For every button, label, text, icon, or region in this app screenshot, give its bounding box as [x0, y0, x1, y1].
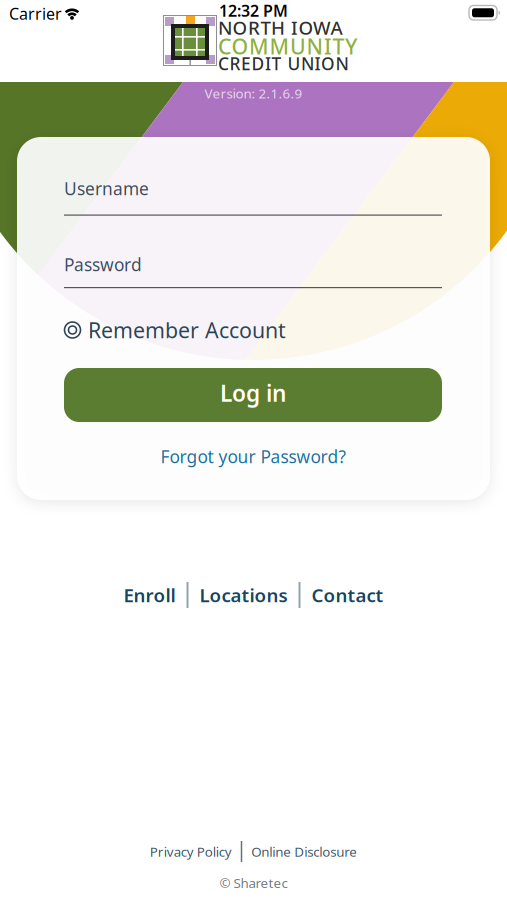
button[interactable]: Privacy Policy: [150, 843, 232, 860]
staticText: Version: 2.1.6.9: [204, 84, 302, 102]
button[interactable]: Enroll: [123, 583, 175, 607]
staticText: Online Disclosure: [251, 843, 357, 860]
staticText: © Sharetec: [219, 874, 287, 892]
staticText: COMMUNITY: [218, 32, 357, 60]
staticText: Username: [64, 177, 149, 200]
staticText: Enroll: [123, 583, 175, 607]
button[interactable]: Log in: [64, 368, 442, 422]
staticText: Password: [64, 253, 142, 276]
staticText: NORTH IOWA: [218, 15, 342, 40]
staticText: Log in: [220, 378, 286, 408]
button[interactable]: Password: [17, 217, 490, 295]
button[interactable]: Locations: [199, 583, 287, 607]
staticText: Carrier: [9, 3, 62, 24]
button[interactable]: Remember Account: [17, 317, 490, 343]
button[interactable]: Contact: [311, 583, 383, 607]
staticText: CREDIT UNION: [218, 52, 348, 75]
staticText: Contact: [311, 583, 383, 607]
staticText: Forgot your Password?: [160, 445, 346, 468]
staticText: Locations: [199, 583, 287, 607]
button[interactable]: Username: [17, 137, 490, 217]
staticText: Privacy Policy: [150, 843, 232, 860]
staticText: Remember Account: [88, 316, 286, 344]
staticText: 12:32 PM: [219, 0, 288, 21]
button[interactable]: Forgot your Password?: [17, 445, 490, 468]
button[interactable]: Online Disclosure: [251, 843, 357, 860]
